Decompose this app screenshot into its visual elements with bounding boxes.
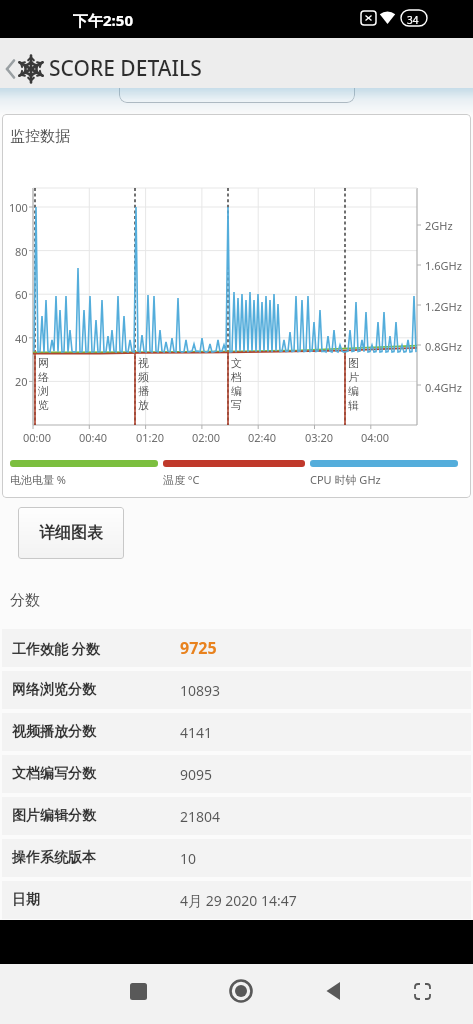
staticText: 视	[138, 356, 149, 370]
staticText: 文	[231, 356, 242, 370]
staticText: 频	[138, 370, 149, 384]
staticText: 00:00	[23, 430, 52, 444]
staticText: CPU 时钟 GHz	[310, 472, 381, 487]
staticText: 档	[231, 370, 242, 384]
button[interactable]	[224, 974, 258, 1008]
staticText: 00:40	[79, 430, 108, 444]
staticText: 03:20	[305, 430, 334, 444]
button[interactable]	[317, 974, 351, 1008]
staticText: 览	[38, 398, 49, 412]
staticText: 0.8GHz	[425, 339, 462, 354]
button[interactable]: 视频播放分数	[2, 713, 471, 751]
button[interactable]: 详细图表	[18, 507, 124, 559]
staticText: 日期	[12, 891, 180, 909]
staticText: 0.4GHz	[425, 380, 462, 395]
button[interactable]: SCORE DETAILS	[0, 38, 473, 88]
button[interactable]: 图片编辑分数	[2, 797, 471, 835]
staticText: 下午2:50	[73, 10, 133, 30]
button[interactable]: 操作系统版本	[2, 839, 471, 877]
staticText: 监控数据	[10, 127, 70, 146]
button[interactable]	[406, 975, 438, 1007]
staticText: 片	[348, 370, 359, 384]
staticText: 视频播放分数	[12, 723, 180, 741]
staticText: 21804	[180, 807, 221, 826]
staticText: 辑	[348, 398, 359, 412]
staticText: 播	[138, 384, 149, 398]
staticText: 4月 29 2020 14:47	[180, 891, 297, 910]
staticText: 网络浏览分数	[12, 681, 180, 699]
staticText: 文档编写分数	[12, 765, 180, 783]
button[interactable]: 文档编写分数	[2, 755, 471, 793]
staticText: 详细图表	[39, 523, 103, 543]
staticText: 编	[231, 384, 242, 398]
staticText: 02:00	[192, 430, 221, 444]
staticText: 网	[38, 356, 49, 370]
staticText: 34	[407, 13, 419, 27]
staticText: 80	[15, 244, 28, 258]
staticText: 放	[138, 398, 149, 412]
staticText: 络	[38, 370, 49, 384]
staticText: 1.6GHz	[425, 258, 462, 273]
staticText: 图片编辑分数	[12, 807, 180, 825]
button[interactable]: 工作效能 分数	[2, 629, 471, 667]
staticText: 图	[348, 356, 359, 370]
staticText: 02:40	[248, 430, 277, 444]
button[interactable]: 日期	[2, 881, 471, 919]
staticText: 10	[180, 849, 197, 868]
staticText: SCORE DETAILS	[49, 54, 202, 83]
button[interactable]	[121, 974, 155, 1008]
staticText: 100	[9, 200, 28, 214]
staticText: 写	[231, 398, 242, 412]
button[interactable]: 网络浏览分数	[2, 671, 471, 709]
staticText: 分数	[10, 591, 40, 610]
staticText: 4141	[180, 723, 213, 742]
staticText: 1.2GHz	[425, 299, 462, 314]
staticText: 编	[348, 384, 359, 398]
staticText: 工作效能 分数	[12, 639, 180, 658]
staticText: 01:20	[136, 430, 165, 444]
staticText: 10893	[180, 681, 221, 700]
staticText: 操作系统版本	[12, 849, 180, 867]
staticText: 浏	[38, 384, 49, 398]
staticText: 04:00	[361, 430, 390, 444]
staticText: 20	[15, 374, 28, 388]
staticText: 2GHz	[425, 218, 453, 233]
staticText: 温度 °C	[163, 472, 200, 487]
staticText: 9725	[180, 637, 217, 659]
staticText: 9095	[180, 765, 213, 784]
staticText: 40	[15, 331, 28, 345]
staticText: 电池电量 %	[10, 472, 67, 487]
staticText: 60	[15, 287, 28, 301]
